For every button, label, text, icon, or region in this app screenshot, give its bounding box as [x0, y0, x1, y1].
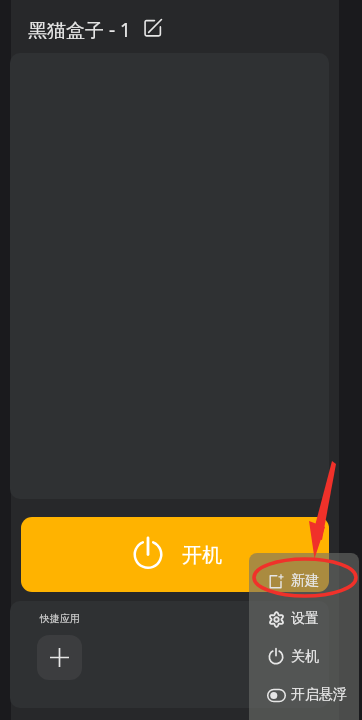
staticText: 关机 — [291, 648, 319, 666]
button[interactable]: Rename — [142, 17, 164, 39]
staticText: 快捷应用 — [40, 612, 80, 625]
button[interactable]: 新建 — [249, 562, 359, 600]
button[interactable]: 开机 — [21, 517, 329, 592]
button[interactable]: 关机 — [249, 638, 359, 676]
button[interactable]: 设置 — [249, 600, 359, 638]
button[interactable]: Add shortcut — [37, 635, 82, 680]
button[interactable]: 开启悬浮 — [249, 676, 359, 714]
staticText: 新建 — [291, 572, 319, 590]
staticText: 黑猫盒子 - 1 — [28, 17, 131, 39]
staticText: 设置 — [291, 610, 319, 628]
staticText: 开机 — [182, 543, 222, 568]
staticText: 开启悬浮 — [291, 686, 347, 704]
